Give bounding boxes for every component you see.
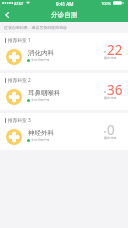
staticText: 神经外科 <box>28 129 54 137</box>
staticText: 0 <box>107 121 115 139</box>
staticText: 推荐科室 3 <box>8 117 31 123</box>
staticText: 分诊自测 <box>51 11 78 19</box>
staticText: 剩余号源 <box>104 56 117 60</box>
button[interactable]: 推荐科室 3 <box>0 113 128 150</box>
staticText: 36 <box>107 81 123 99</box>
staticText: 症状自测结果，建议尽快到医院就诊 <box>4 25 67 30</box>
staticText: 消化内科 <box>28 49 54 57</box>
button[interactable]: 推荐科室 1 <box>0 33 128 70</box>
staticText: 推荐科室 1 <box>8 37 31 43</box>
staticText: 剩余号源 <box>104 96 117 100</box>
staticText: 今日可预约号 <box>31 138 50 142</box>
staticText: AT&T <box>14 1 24 6</box>
button[interactable]: Back <box>0 8 14 22</box>
staticText: 今日可预约号 <box>31 58 50 62</box>
staticText: 9:41 AM <box>56 1 74 7</box>
staticText: 今日可预约号 <box>31 98 50 102</box>
staticText: 推荐科室 2 <box>8 77 31 83</box>
staticText: 剩余号源 <box>104 136 117 140</box>
staticText: 耳鼻咽喉科 <box>28 89 61 97</box>
button[interactable]: 推荐科室 2 <box>0 73 128 110</box>
staticText: 22 <box>107 41 123 59</box>
staticText: 100% <box>101 1 112 6</box>
